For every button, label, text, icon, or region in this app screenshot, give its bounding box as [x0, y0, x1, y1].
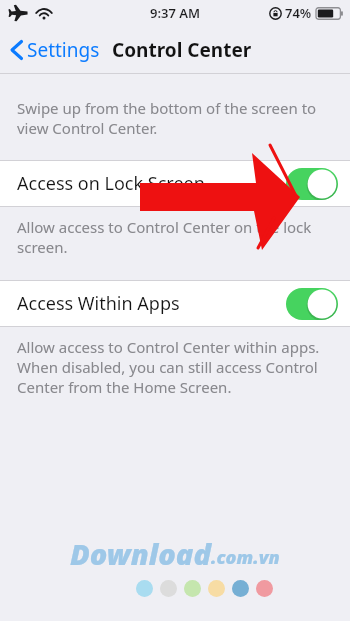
staticText: .com.vn [211, 545, 280, 570]
staticText: Allow access to Control Center within ap… [17, 337, 330, 397]
staticText: Download [70, 534, 211, 573]
button[interactable]: Toggle on [286, 288, 338, 320]
staticText: Allow access to Control Center on the lo… [17, 217, 330, 257]
button[interactable]: Settings [6, 35, 104, 65]
button[interactable]: Access Within Apps [0, 281, 350, 326]
staticText: Settings [27, 37, 100, 63]
staticText: Access Within Apps [17, 291, 180, 316]
button[interactable]: Access on Lock Screen [0, 161, 350, 206]
staticText: 74% [285, 4, 312, 22]
staticText: Control Center [112, 37, 252, 63]
staticText: Swipe up from the bottom of the screen t… [17, 98, 330, 138]
staticText: Access on Lock Screen [17, 171, 205, 196]
staticText: 9:37 AM [150, 4, 201, 22]
button[interactable]: Toggle on [286, 168, 338, 200]
